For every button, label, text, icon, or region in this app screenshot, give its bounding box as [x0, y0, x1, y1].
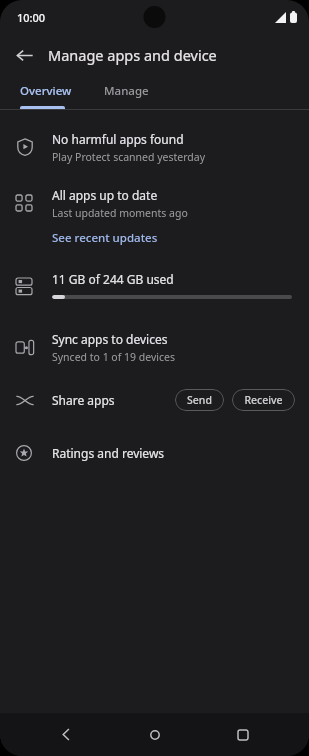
staticText: Sync apps to devices — [52, 331, 168, 347]
staticText: Manage — [104, 83, 149, 99]
staticText: No harmful apps found — [52, 131, 184, 147]
button[interactable]: All apps up to date — [0, 182, 309, 224]
button[interactable]: Back — [44, 713, 88, 756]
staticText: Manage apps and device — [48, 45, 217, 65]
button[interactable]: Manage — [92, 75, 161, 106]
button[interactable]: Recent apps — [221, 713, 265, 756]
staticText: 11 GB of 244 GB used — [52, 271, 174, 287]
staticText: See recent updates — [52, 230, 158, 246]
staticText: Share apps — [52, 392, 175, 408]
staticText: All apps up to date — [52, 187, 158, 203]
button[interactable]: Home — [133, 713, 177, 756]
button[interactable]: Sync apps to devices — [0, 326, 309, 368]
staticText: Receive — [244, 393, 283, 407]
staticText: Send — [187, 393, 212, 407]
button[interactable]: 11 GB of 244 GB used — [0, 266, 309, 306]
staticText: Overview — [20, 83, 72, 99]
button[interactable]: Overview — [0, 75, 92, 106]
staticText: Synced to 1 of 19 devices — [52, 350, 176, 364]
staticText: Play Protect scanned yesterday — [52, 150, 206, 164]
button[interactable]: No harmful apps found — [0, 126, 309, 168]
staticText: 10:00 — [17, 10, 46, 25]
staticText: Ratings and reviews — [52, 445, 165, 461]
button[interactable]: Back — [8, 39, 40, 71]
button[interactable]: Receive — [232, 389, 295, 411]
staticText: Last updated moments ago — [52, 206, 188, 220]
button[interactable]: See recent updates — [0, 224, 309, 252]
button[interactable]: Send — [175, 389, 224, 411]
button[interactable]: Ratings and reviews — [0, 434, 309, 472]
button[interactable]: Share apps — [0, 382, 309, 418]
